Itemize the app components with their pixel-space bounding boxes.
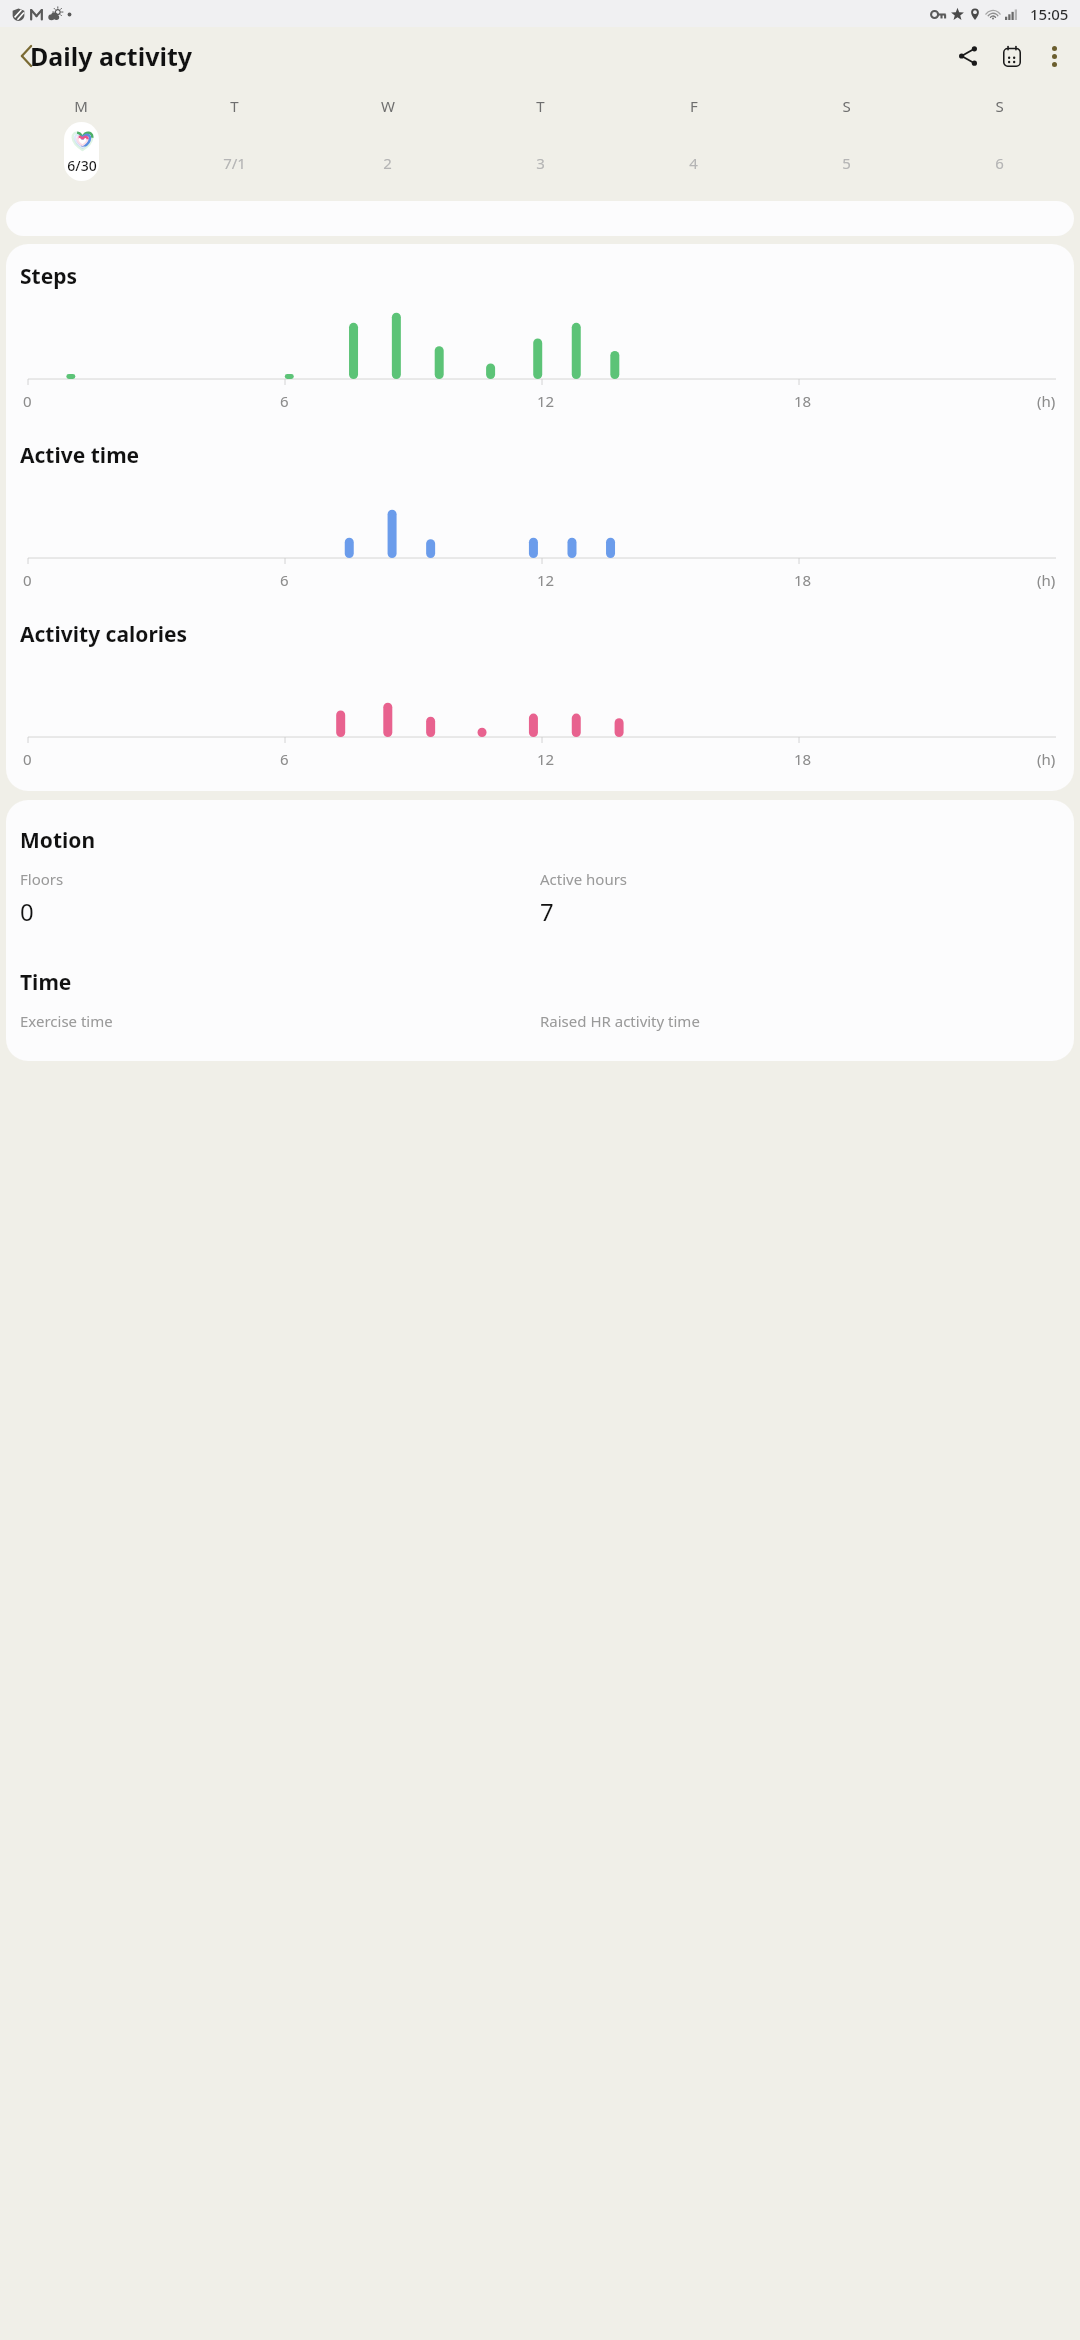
staticText: (h)	[1037, 570, 1056, 590]
staticText: 0	[23, 749, 32, 769]
button[interactable]: Back	[4, 34, 48, 78]
staticText: 0	[23, 391, 32, 411]
button[interactable]: Share	[946, 34, 990, 78]
staticText: 12	[537, 749, 555, 769]
button[interactable]: More options	[1034, 36, 1074, 76]
staticText: Time	[20, 968, 72, 997]
staticText: 6	[280, 570, 289, 590]
staticText: 15:05	[1030, 4, 1069, 24]
staticText: Active time	[20, 441, 140, 470]
staticText: F	[690, 96, 698, 116]
button[interactable]: 6/30	[4, 121, 158, 181]
staticText: 6/30	[67, 156, 97, 175]
staticText: T	[536, 96, 545, 116]
staticText: Daily activity	[30, 39, 193, 73]
staticText: 2	[383, 153, 392, 173]
staticText: Exercise time	[20, 1011, 113, 1031]
staticText: Raised HR activity time	[540, 1011, 700, 1031]
staticText: (h)	[1037, 749, 1056, 769]
staticText: 0	[23, 570, 32, 590]
staticText: 6	[280, 749, 289, 769]
staticText: 3	[536, 153, 545, 173]
staticText: Steps	[20, 262, 78, 291]
staticText: 18	[794, 570, 812, 590]
staticText: 0	[20, 895, 34, 928]
staticText: 18	[794, 749, 812, 769]
staticText: 18	[794, 391, 812, 411]
button[interactable]: 7/1	[158, 121, 311, 181]
button[interactable]: 6	[923, 121, 1076, 181]
staticText: M	[74, 96, 88, 116]
staticText: 5	[842, 153, 851, 173]
button[interactable]: Calendar	[990, 34, 1034, 78]
staticText: (h)	[1037, 391, 1056, 411]
staticText: S	[842, 96, 851, 116]
staticText: 4	[689, 153, 698, 173]
staticText: Motion	[20, 826, 96, 855]
staticText: 12	[537, 570, 555, 590]
staticText: 12	[537, 391, 555, 411]
button[interactable]: 5	[770, 121, 923, 181]
button[interactable]: 4	[617, 121, 770, 181]
staticText: T	[230, 96, 239, 116]
staticText: Active hours	[540, 869, 628, 889]
staticText: Floors	[20, 869, 64, 889]
staticText: 7/1	[223, 153, 246, 173]
staticText: 6	[280, 391, 289, 411]
staticText: 6	[995, 153, 1004, 173]
staticText: 7	[540, 895, 554, 928]
staticText: W	[381, 96, 395, 116]
staticText: Activity calories	[20, 620, 188, 649]
staticText: S	[995, 96, 1004, 116]
